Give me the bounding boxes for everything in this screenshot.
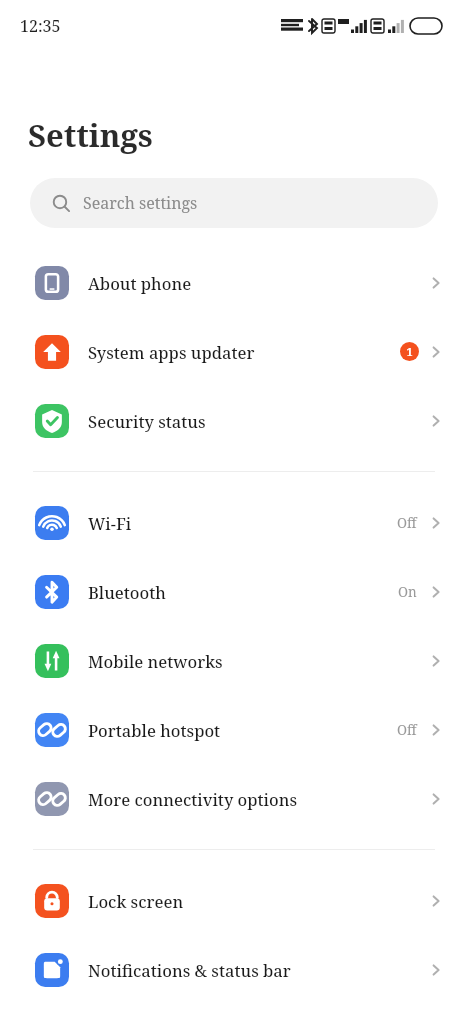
staticText: System apps updater — [88, 341, 400, 363]
staticText: Mobile networks — [88, 650, 426, 672]
staticText: On — [398, 583, 417, 601]
button[interactable]: Notifications & status bar — [0, 935, 468, 1004]
staticText: More connectivity options — [88, 788, 426, 810]
staticText: About phone — [88, 272, 426, 294]
staticText: Off — [397, 514, 417, 532]
staticText: Settings — [28, 114, 153, 156]
button[interactable]: Security status — [0, 386, 468, 455]
staticText: Notifications & status bar — [88, 959, 426, 981]
button[interactable]: More connectivity options — [0, 764, 468, 833]
button[interactable]: System apps updater — [0, 317, 468, 386]
staticText: Portable hotspot — [88, 719, 397, 741]
staticText: Off — [397, 721, 417, 739]
button[interactable]: Wi-Fi — [0, 488, 468, 557]
button[interactable]: Search settings — [30, 178, 438, 228]
staticText: Bluetooth — [88, 581, 398, 603]
staticText: Lock screen — [88, 890, 426, 912]
button[interactable]: Bluetooth — [0, 557, 468, 626]
staticText: Security status — [88, 410, 426, 432]
staticText: 1 — [406, 344, 413, 359]
staticText: 12:35 — [20, 15, 61, 37]
staticText: Wi-Fi — [88, 512, 397, 534]
button[interactable]: About phone — [0, 248, 468, 317]
button[interactable]: Portable hotspot — [0, 695, 468, 764]
button[interactable]: Mobile networks — [0, 626, 468, 695]
staticText: Search settings — [83, 192, 198, 214]
button[interactable]: Lock screen — [0, 866, 468, 935]
